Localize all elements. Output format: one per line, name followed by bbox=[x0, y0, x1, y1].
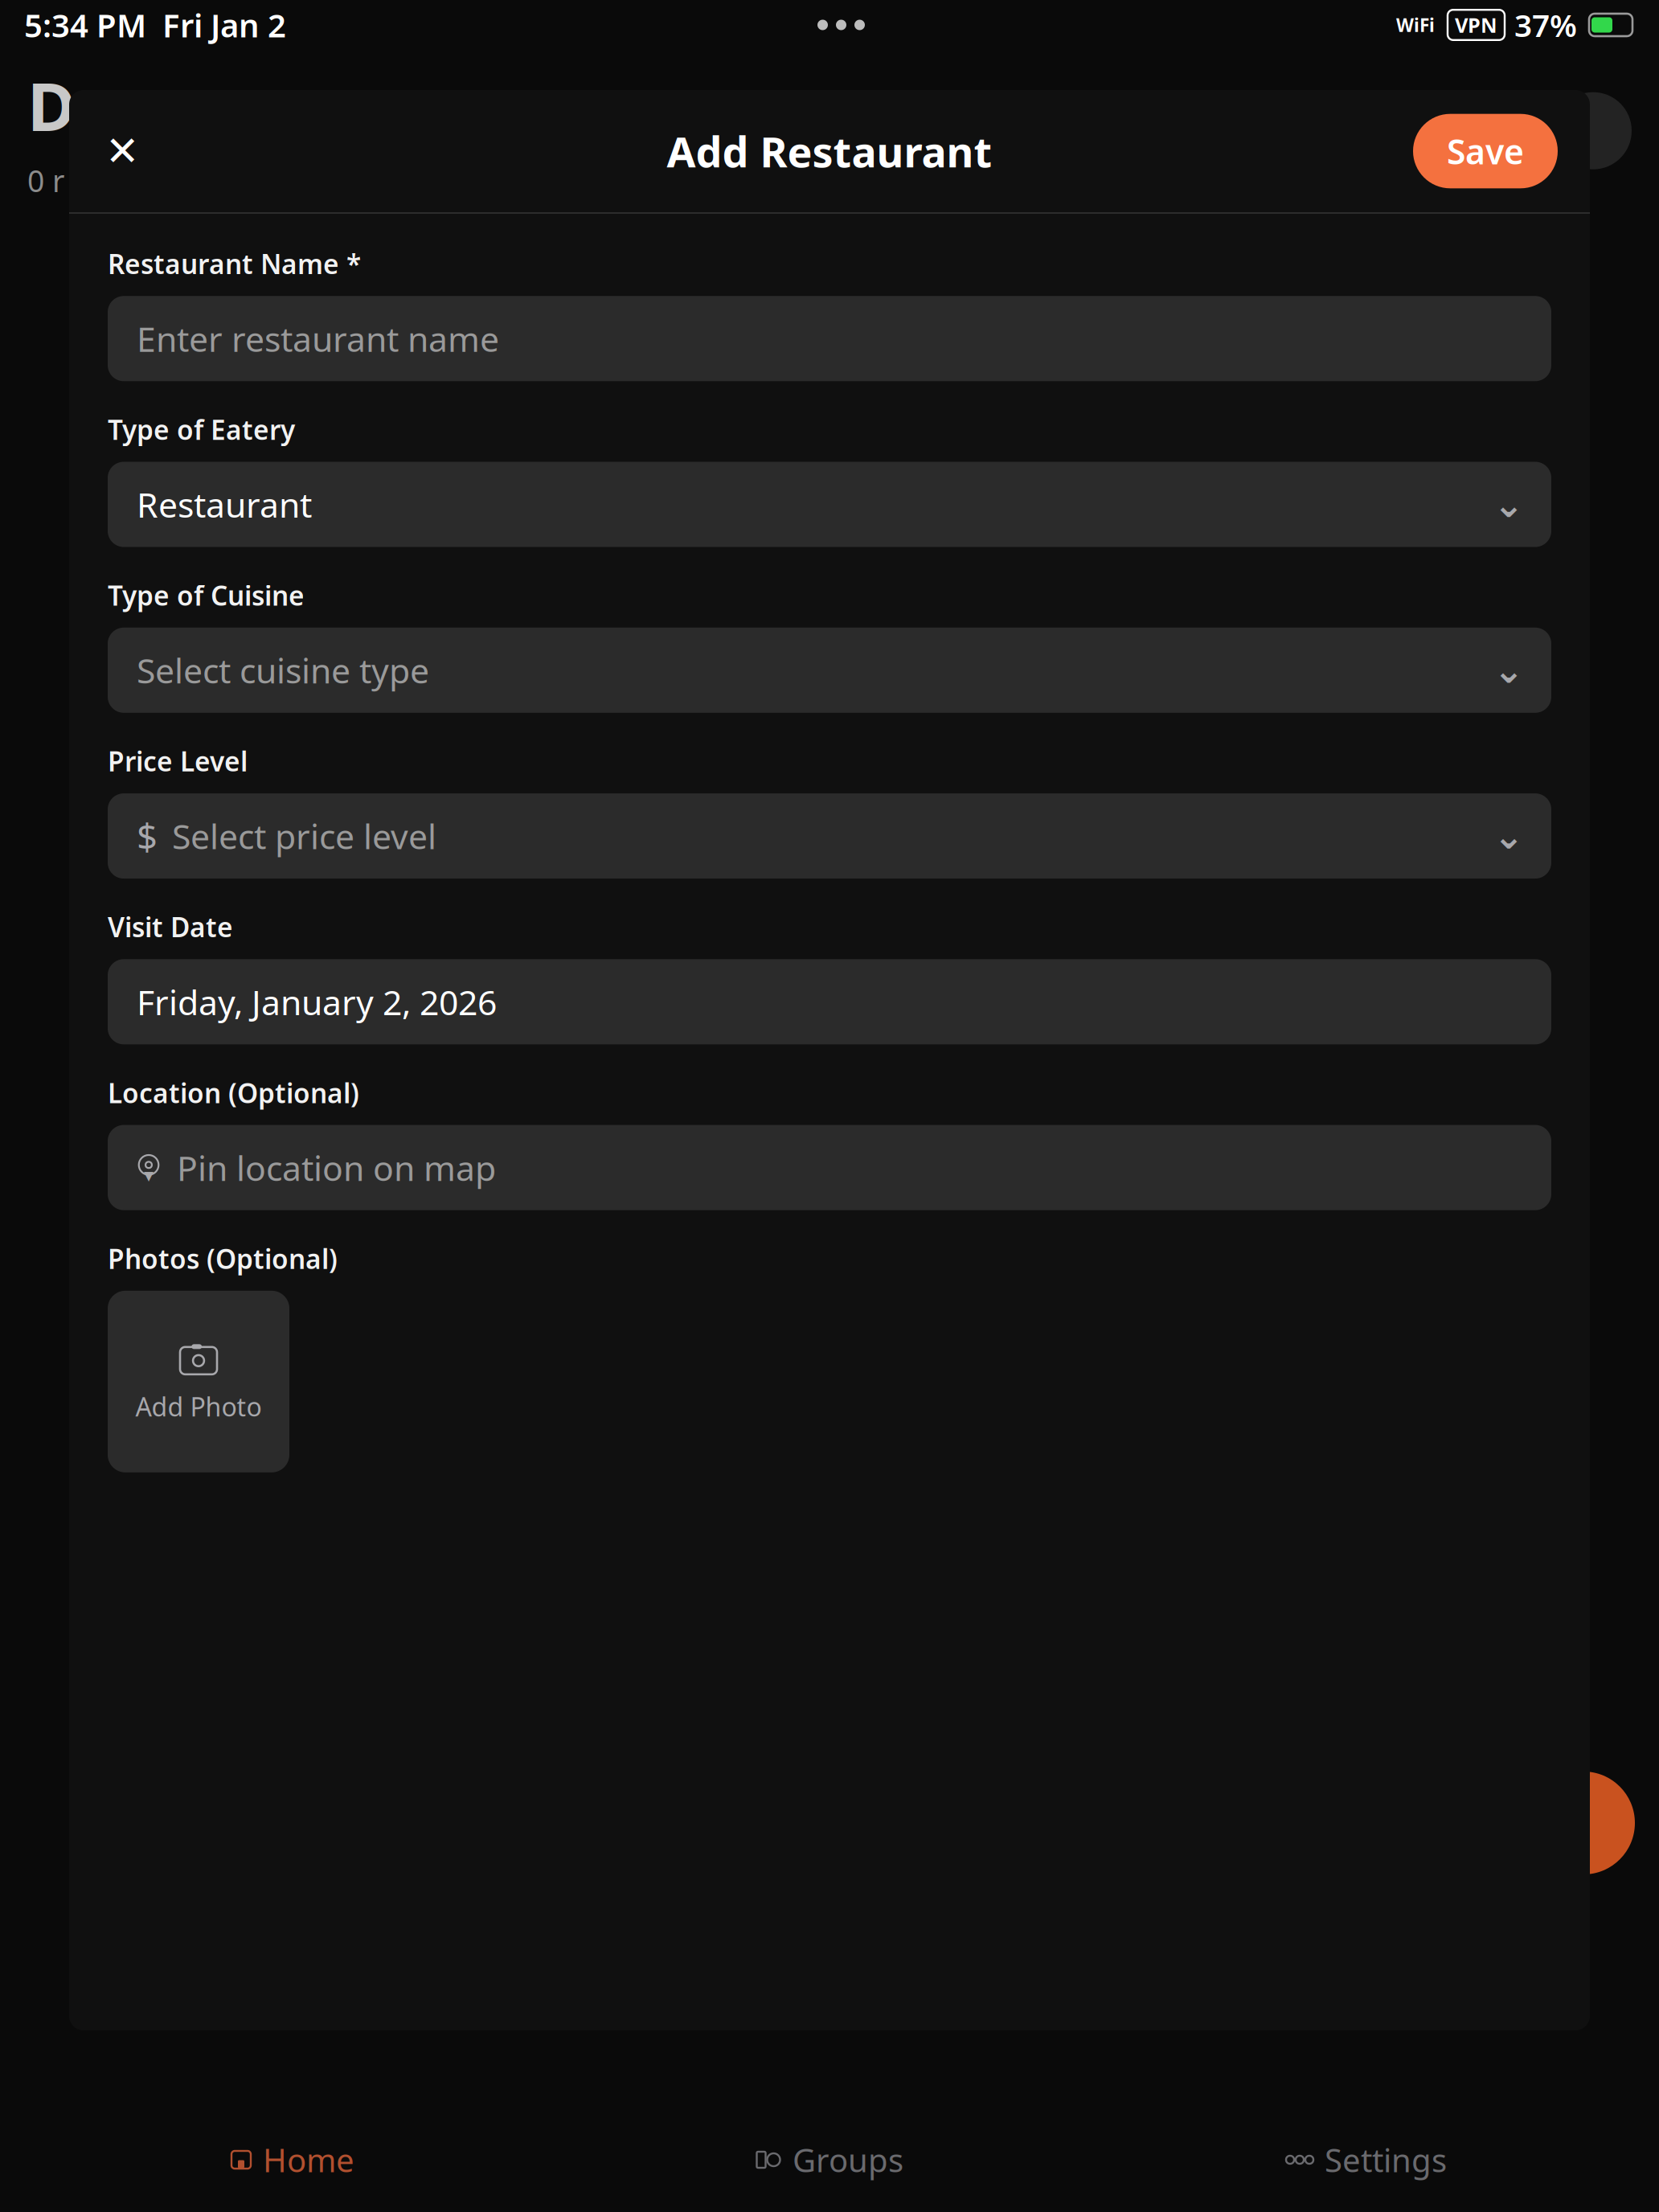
staticText: Home bbox=[263, 2138, 354, 2181]
staticText: Restaurant bbox=[137, 482, 312, 527]
staticText: Restaurant Name * bbox=[108, 246, 361, 282]
staticText: Select cuisine type bbox=[137, 647, 429, 693]
staticText: Select price level bbox=[172, 813, 436, 859]
staticText: VPN bbox=[1455, 11, 1497, 38]
button[interactable]: Groups bbox=[561, 2116, 1098, 2204]
button[interactable]: $ bbox=[108, 793, 1551, 879]
button[interactable]: Add Photo bbox=[108, 1291, 289, 1472]
staticText: Add Restaurant bbox=[667, 123, 992, 179]
staticText: Type of Cuisine bbox=[108, 578, 305, 613]
staticText: Type of Eatery bbox=[108, 412, 295, 447]
staticText: ⌄ bbox=[1493, 815, 1524, 857]
staticText: ✕ bbox=[105, 128, 139, 174]
button[interactable]: Settings bbox=[1098, 2116, 1635, 2204]
staticText: D bbox=[27, 61, 76, 149]
staticText: Pin location on map bbox=[177, 1145, 496, 1190]
staticText: 5:34 PM bbox=[24, 4, 146, 46]
staticText: WiFi bbox=[1396, 13, 1435, 37]
staticText: ▾ bbox=[144, 1164, 154, 1186]
button[interactable]: Friday, January 2, 2026 bbox=[108, 959, 1551, 1044]
staticText: Fri Jan 2 bbox=[162, 4, 286, 46]
staticText: 37% bbox=[1514, 4, 1577, 45]
staticText: ⌄ bbox=[1493, 484, 1524, 525]
button[interactable]: Save bbox=[1413, 114, 1558, 188]
staticText: Groups bbox=[793, 2138, 903, 2181]
staticText: Friday, January 2, 2026 bbox=[137, 979, 497, 1025]
staticText: Location (Optional) bbox=[108, 1075, 359, 1111]
staticText: Settings bbox=[1325, 2138, 1447, 2181]
staticText: Price Level bbox=[108, 743, 248, 779]
button[interactable]: Select cuisine type bbox=[108, 628, 1551, 713]
staticText: $ bbox=[137, 812, 158, 860]
button[interactable]: Restaurant bbox=[108, 462, 1551, 547]
staticText: ⌄ bbox=[1493, 650, 1524, 691]
staticText: Add Photo bbox=[135, 1389, 262, 1424]
staticText: Enter restaurant name bbox=[137, 316, 499, 361]
staticText: Visit Date bbox=[108, 909, 233, 945]
staticText: Save bbox=[1447, 128, 1524, 174]
button[interactable]: Close bbox=[101, 130, 143, 172]
button[interactable]: Home bbox=[24, 2116, 561, 2204]
staticText: Photos (Optional) bbox=[108, 1241, 338, 1276]
staticText: 0 r bbox=[27, 161, 64, 200]
button[interactable]: ▾ bbox=[108, 1125, 1551, 1210]
